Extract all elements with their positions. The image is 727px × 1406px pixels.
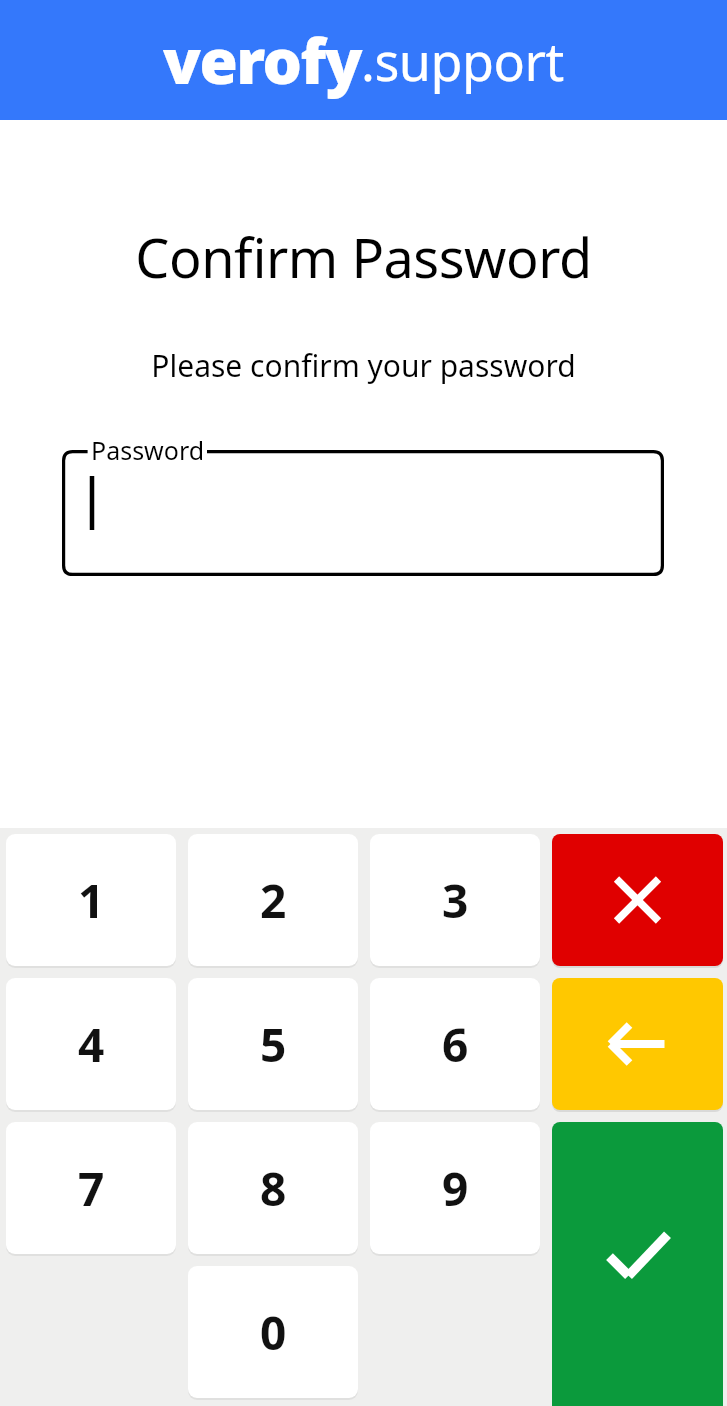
staticText: Please confirm your password xyxy=(0,345,727,386)
staticText: 2 xyxy=(260,869,287,932)
button[interactable]: 3 xyxy=(370,834,540,966)
button[interactable]: 9 xyxy=(370,1122,540,1254)
button[interactable]: Cancel xyxy=(552,834,723,966)
staticText: 4 xyxy=(78,1013,105,1076)
button[interactable]: 4 xyxy=(6,978,176,1110)
staticText: Password xyxy=(91,433,205,467)
staticText: .support xyxy=(361,25,564,96)
staticText: 9 xyxy=(442,1157,469,1220)
staticText: verofy xyxy=(163,18,361,102)
staticText: 7 xyxy=(78,1157,105,1220)
button[interactable]: 2 xyxy=(188,834,358,966)
staticText: 0 xyxy=(260,1301,287,1364)
staticText: 1 xyxy=(78,869,105,932)
staticText: 3 xyxy=(442,869,469,932)
staticText: 8 xyxy=(260,1157,287,1220)
button[interactable]: 5 xyxy=(188,978,358,1110)
button[interactable]: 8 xyxy=(188,1122,358,1254)
button[interactable]: 7 xyxy=(6,1122,176,1254)
button[interactable]: Password xyxy=(62,450,664,576)
button[interactable]: 6 xyxy=(370,978,540,1110)
button[interactable]: Confirm xyxy=(552,1122,723,1406)
staticText: 5 xyxy=(260,1013,287,1076)
staticText: 6 xyxy=(442,1013,469,1076)
button[interactable]: Backspace xyxy=(552,978,723,1110)
button[interactable]: 0 xyxy=(188,1266,358,1398)
staticText: Confirm Password xyxy=(0,220,727,294)
button[interactable]: 1 xyxy=(6,834,176,966)
